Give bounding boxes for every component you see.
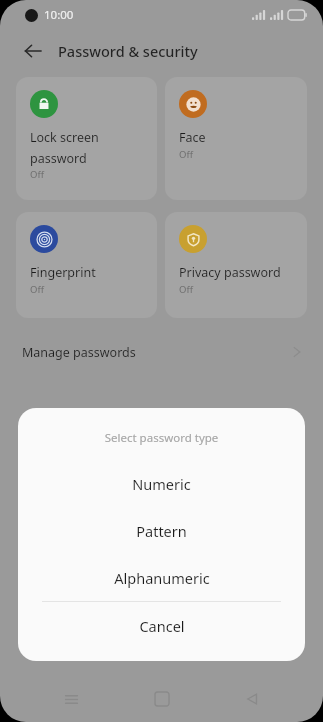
button[interactable]: Cancel [18,602,305,649]
staticText: Off [179,283,193,296]
staticText: Password & security [58,41,198,61]
button[interactable]: Alphanumeric [18,554,305,601]
staticText: Lock screen password [30,129,99,166]
button[interactable]: Back [18,36,48,66]
button[interactable]: Pattern [18,507,305,554]
staticText: Select password type [18,430,305,446]
staticText: 10:00 [44,7,74,23]
button[interactable]: Lock screen password [16,77,157,200]
button[interactable]: Face [165,77,307,200]
staticText: Privacy password [179,264,281,281]
staticText: Off [30,168,44,181]
staticText: Numeric [132,474,191,494]
button[interactable]: Numeric [18,460,305,507]
button[interactable]: Fingerprint [16,212,157,318]
staticText: Alphanumeric [114,568,210,588]
staticText: Off [179,148,193,161]
staticText: Off [30,283,44,296]
staticText: Cancel [139,616,185,636]
staticText: Face [179,129,206,146]
button[interactable]: Manage passwords [0,330,323,374]
staticText: Fingerprint [30,264,96,281]
staticText: Manage passwords [22,344,136,361]
staticText: Pattern [136,521,187,541]
button[interactable]: Privacy password [165,212,307,318]
